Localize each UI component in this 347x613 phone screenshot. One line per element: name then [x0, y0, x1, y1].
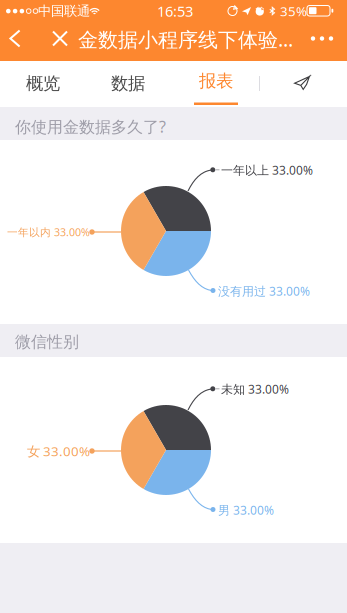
staticText: 没有用过 33.00% — [218, 283, 310, 299]
staticText: 报表 — [199, 70, 233, 92]
button[interactable]: Back — [0, 19, 30, 58]
button[interactable]: 概览 — [6, 61, 80, 106]
staticText: 女 33.00% — [27, 442, 90, 460]
button[interactable]: Share — [282, 63, 322, 103]
staticText: 中国联通 — [38, 3, 90, 19]
button[interactable]: Close — [41, 19, 79, 58]
button[interactable]: 数据 — [91, 61, 165, 106]
staticText: 金数据小程序线下体验活… — [78, 26, 293, 52]
staticText: 你使用金数据多久了? — [15, 116, 166, 137]
staticText: 数据 — [111, 73, 145, 94]
staticText: 概览 — [26, 73, 60, 94]
staticText: 微信性别 — [15, 332, 79, 352]
button[interactable]: More — [302, 19, 342, 58]
button[interactable]: 报表 — [179, 61, 253, 107]
staticText: 一年以上 33.00% — [221, 162, 313, 178]
staticText: 16:53 — [157, 1, 193, 21]
staticText: 男 33.00% — [218, 502, 274, 518]
staticText: 未知 33.00% — [221, 381, 289, 397]
staticText: 35% — [280, 2, 307, 20]
staticText: 一年以内 33.00% — [7, 225, 90, 239]
